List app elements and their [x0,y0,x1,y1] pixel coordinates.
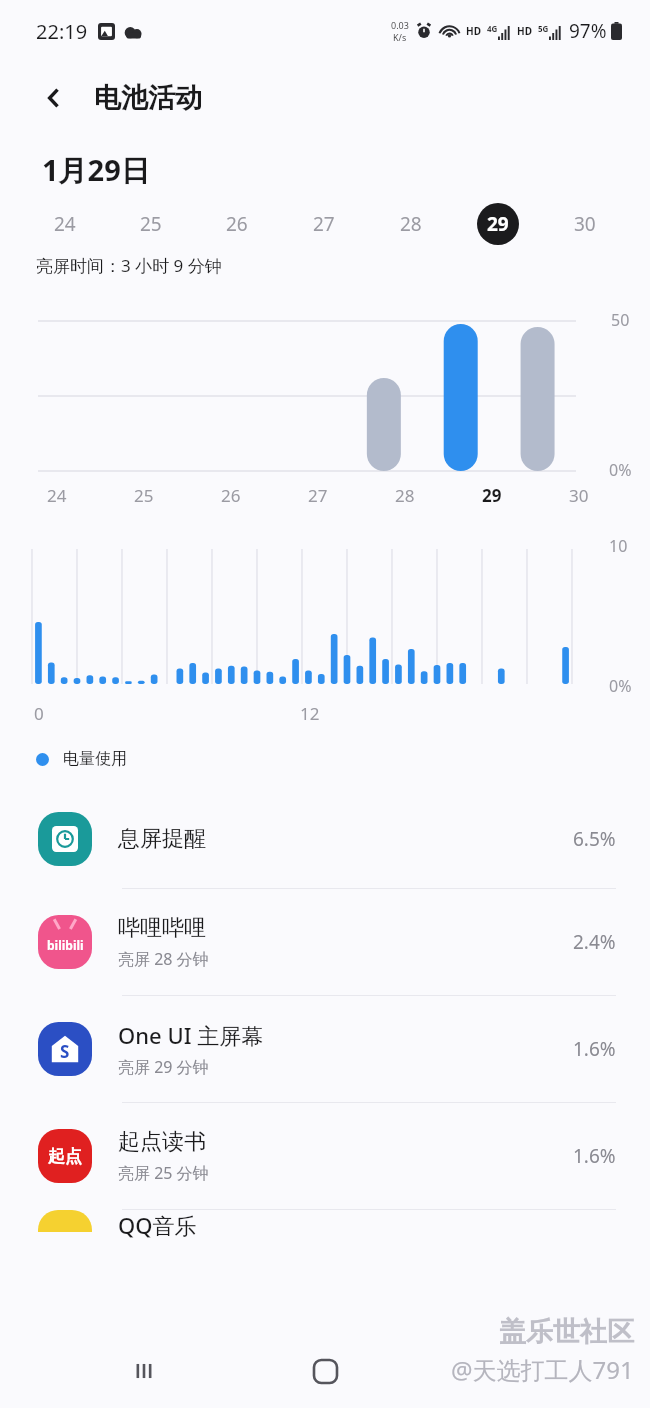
staticText: 4G [487,23,498,34]
staticText: 28 [395,484,415,507]
staticText: 哔哩哔哩 [118,914,206,942]
staticText: 30 [574,211,596,237]
staticText: 息屏提醒 [118,825,206,853]
staticText: 1.6% [573,1036,616,1062]
staticText: 起点 [48,1146,82,1167]
staticText: 电量使用 [63,749,127,769]
button[interactable]: 起点 [0,1103,650,1209]
staticText: 0% [609,675,632,697]
staticText: K/s [393,31,407,43]
staticText: 0% [609,459,632,481]
staticText: One UI 主屏幕 [118,1020,264,1050]
staticText: 12 [300,702,320,725]
button[interactable]: bilibili [0,889,650,995]
staticText: 2.4% [573,929,616,955]
staticText: 起点读书 [118,1128,206,1156]
staticText: 亮屏 29 分钟 [118,1056,209,1078]
staticText: 1月29日 [42,150,150,190]
staticText: 1.6% [573,1143,616,1169]
staticText: 5G [538,23,549,34]
button[interactable]: 25 [108,196,194,252]
staticText: @天选打工人791 [451,1353,634,1386]
staticText: 24 [47,484,67,507]
staticText: 29 [487,211,509,237]
button[interactable]: 27 [280,196,367,252]
staticText: 6.5% [573,826,616,852]
staticText: HD [466,24,481,38]
staticText: 27 [313,211,335,237]
button[interactable]: 30 [541,196,628,252]
staticText: 24 [54,211,76,237]
staticText: 10 [609,535,628,557]
button[interactable]: Home [288,1334,362,1408]
staticText: 30 [569,484,589,507]
button[interactable]: S [0,996,650,1102]
staticText: QQ音乐 [118,1210,197,1240]
staticText: 亮屏 28 分钟 [118,948,209,970]
button[interactable]: 29 [454,196,541,252]
button[interactable]: Recents [107,1334,181,1408]
staticText: 25 [134,484,154,507]
staticText: 50 [611,309,630,331]
button[interactable]: 28 [367,196,454,252]
button[interactable]: 24 [22,196,108,252]
button[interactable]: 息屏提醒 [0,790,650,888]
staticText: 0 [34,702,44,725]
button[interactable]: Back [469,1334,543,1408]
staticText: S [60,1040,70,1063]
button[interactable]: 26 [194,196,280,252]
staticText: 电池活动 [94,81,202,115]
staticText: 28 [400,211,422,237]
staticText: 26 [221,484,241,507]
staticText: 亮屏 25 分钟 [118,1162,209,1184]
staticText: 亮屏时间：3 小时 9 分钟 [36,254,222,277]
staticText: 26 [226,211,248,237]
staticText: 25 [140,211,162,237]
staticText: 29 [482,484,502,507]
staticText: 0.03 [391,19,409,31]
staticText: 22:19 [36,18,88,45]
staticText: 97% [569,18,607,44]
staticText: 盖乐世社区 [499,1315,634,1349]
staticText: HD [517,24,532,38]
button[interactable]: Back [30,74,78,122]
button[interactable]: QQ音乐 [0,1210,650,1270]
staticText: 27 [308,484,328,507]
staticText: bilibili [47,937,84,953]
